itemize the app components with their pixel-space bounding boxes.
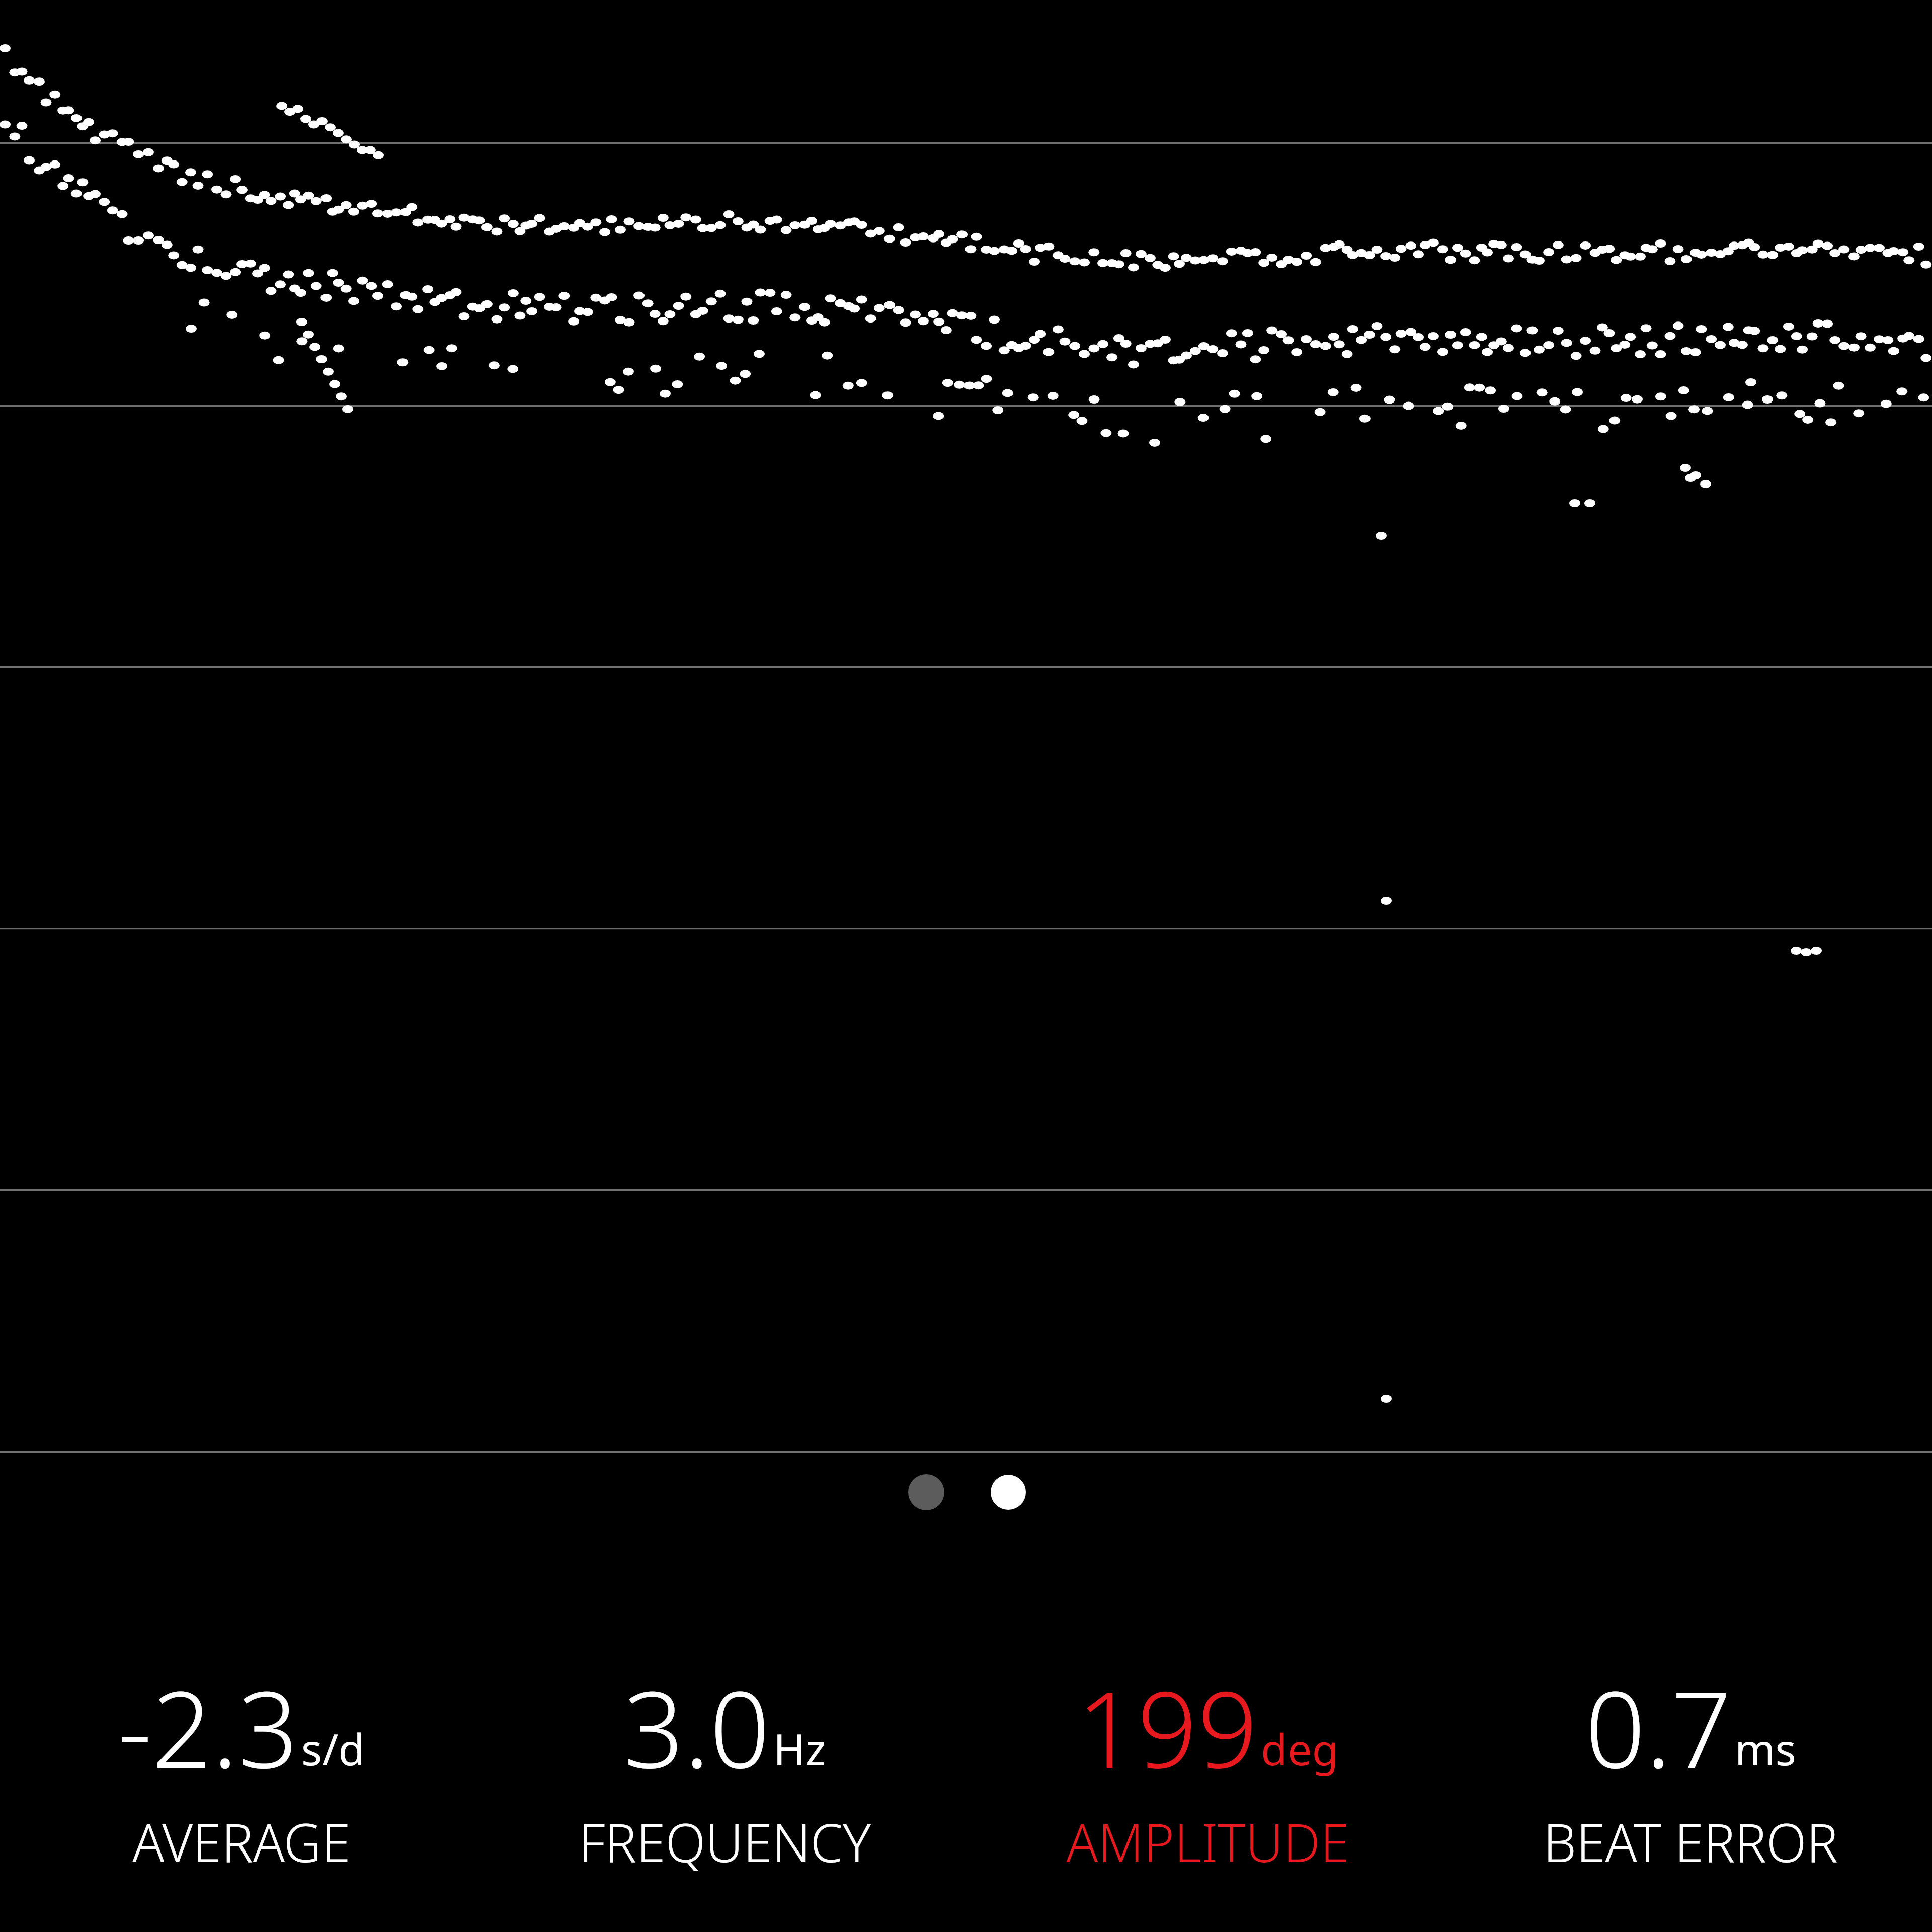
button[interactable]: 3.0 [483,1655,966,1932]
staticText: ms [1735,1719,1796,1778]
staticText: AVERAGE [132,1806,351,1878]
staticText: deg [1261,1719,1339,1778]
staticText: 199 [1077,1655,1258,1799]
staticText: BEAT ERROR [1543,1806,1838,1878]
staticText: AMPLITUDE [1066,1806,1349,1878]
button[interactable]: 199 [966,1655,1449,1932]
staticText: FREQUENCY [579,1806,871,1878]
staticText: s/d [301,1719,365,1778]
button[interactable] [0,0,1932,1454]
staticText: 0.7 [1585,1655,1732,1799]
staticText: 3.0 [623,1655,770,1799]
button[interactable]: -2.3 [0,1655,483,1932]
staticText: -2.3 [118,1655,298,1799]
button[interactable]: 0.7 [1449,1655,1932,1932]
staticText: Hz [773,1719,826,1778]
button[interactable]: Page indicator [908,1474,1026,1510]
